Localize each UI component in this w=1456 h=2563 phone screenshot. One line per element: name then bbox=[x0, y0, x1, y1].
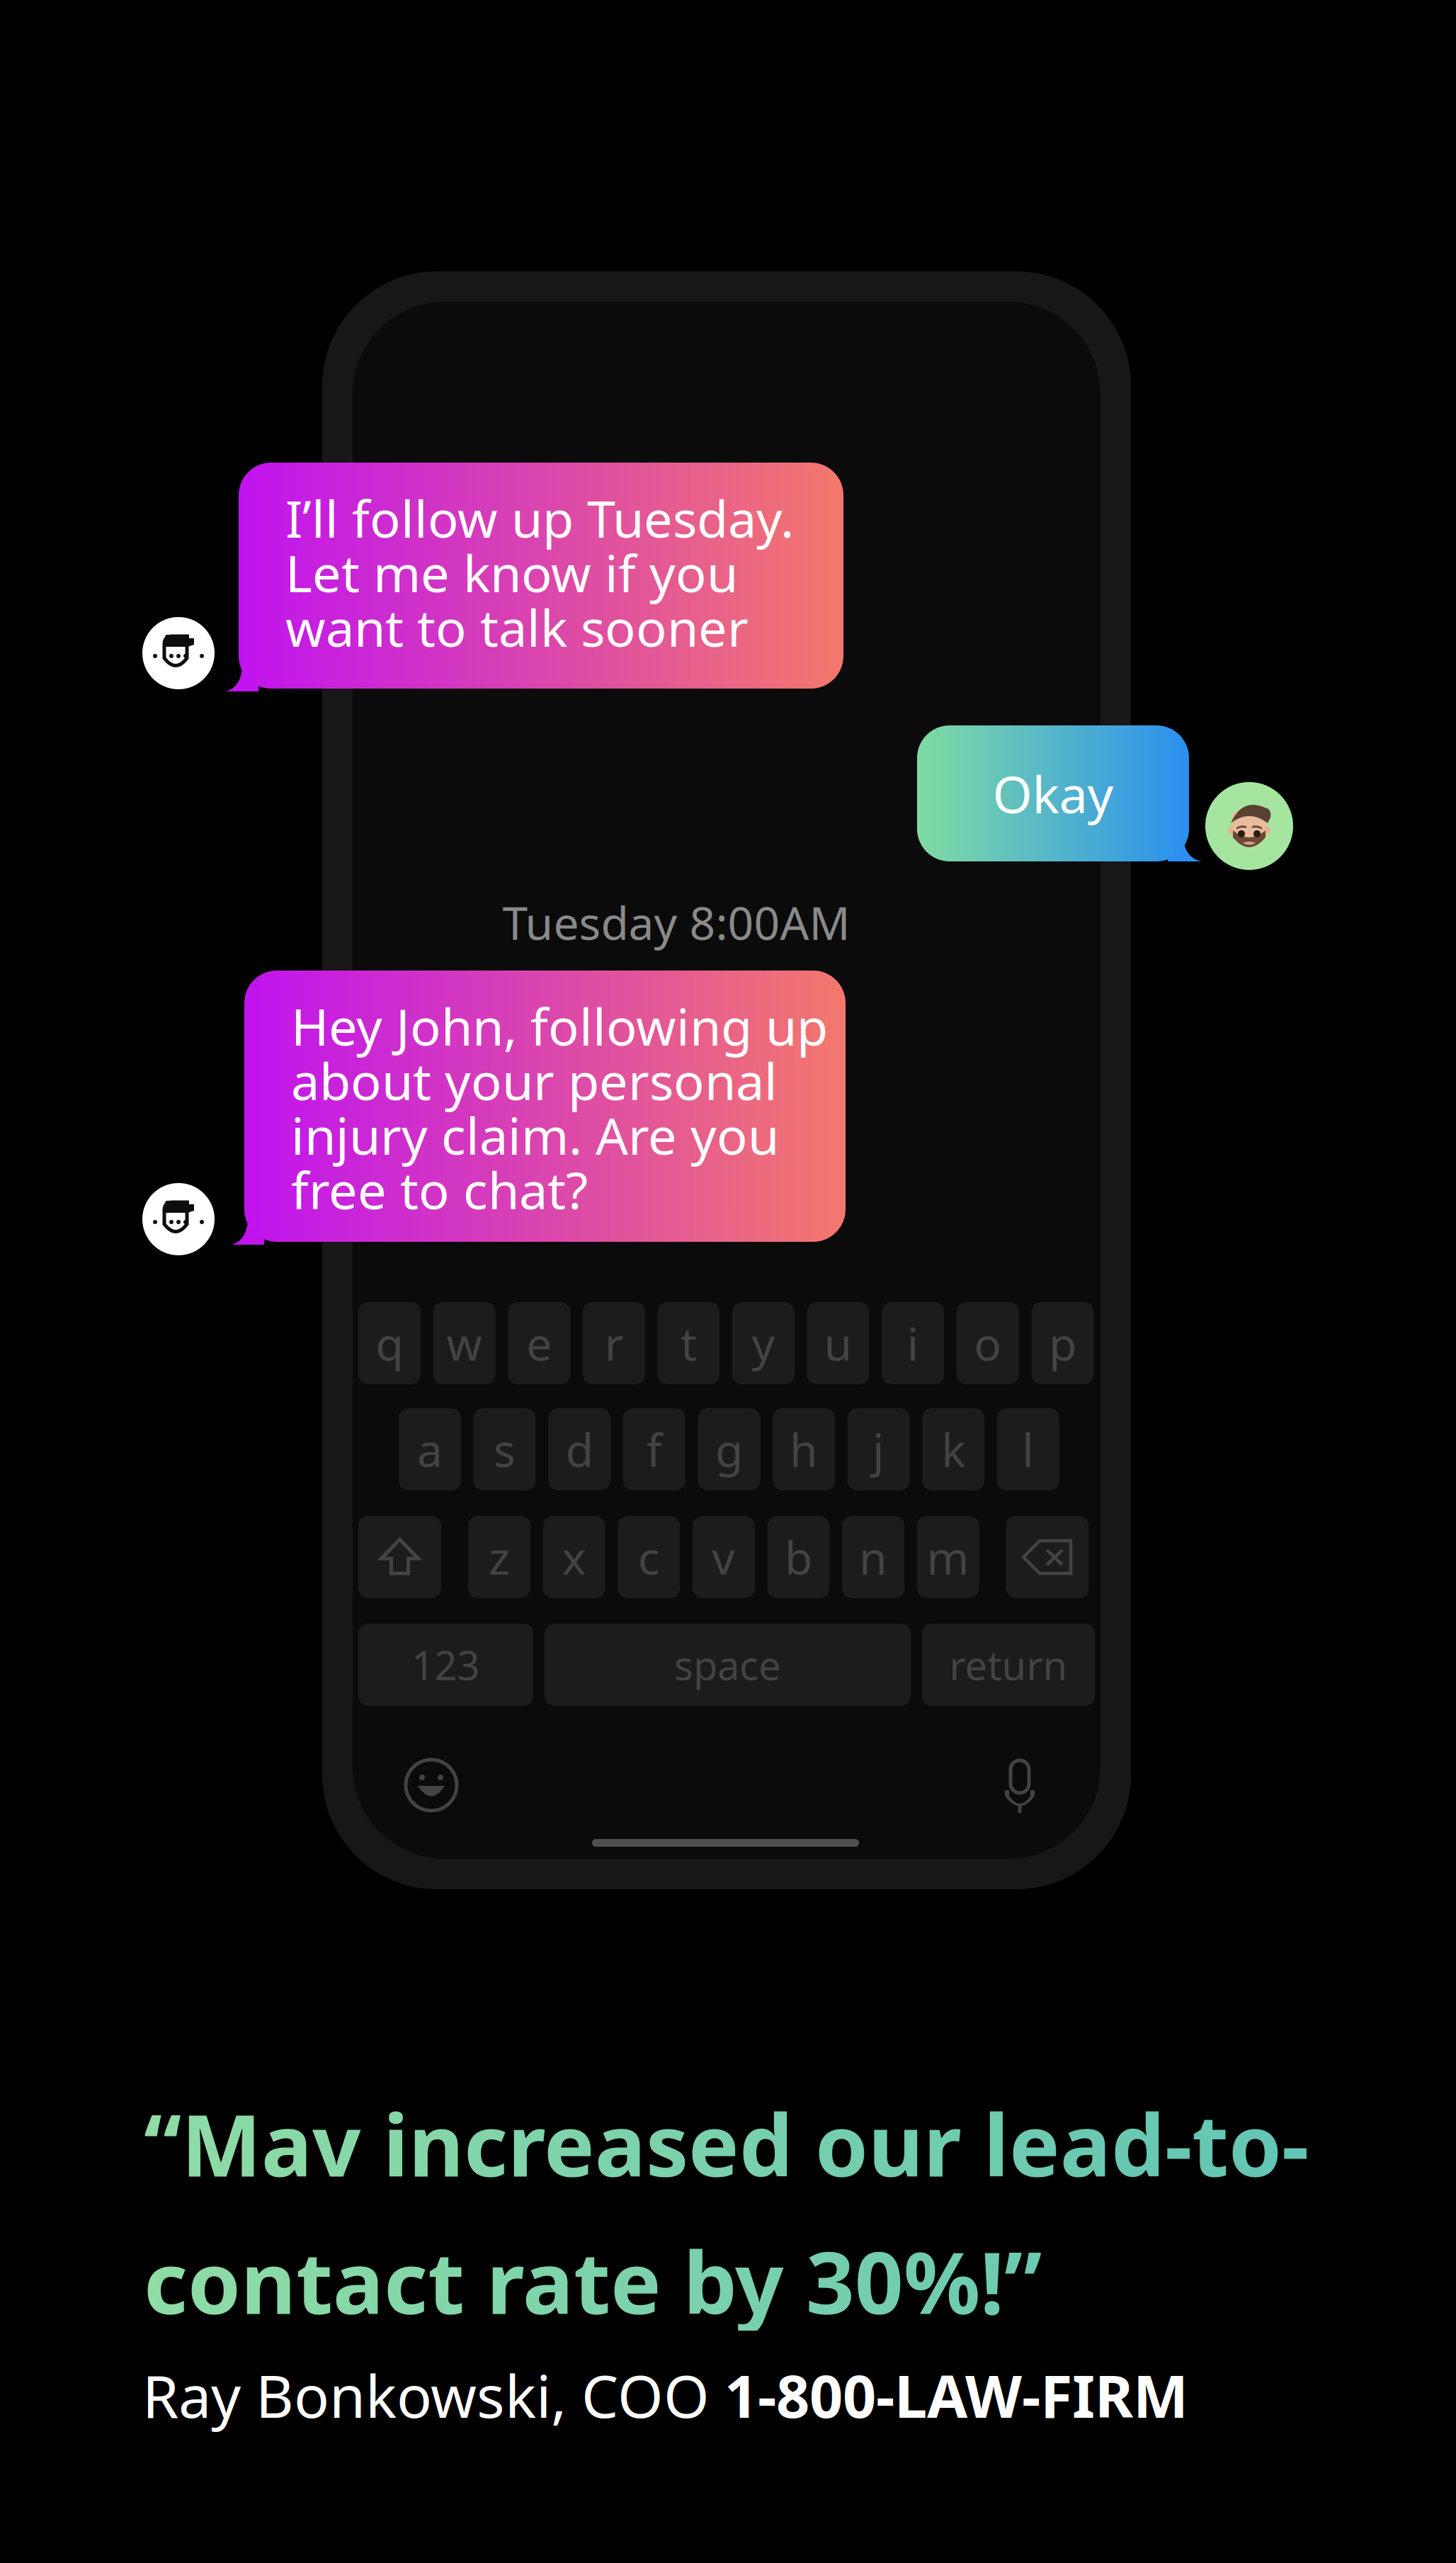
button[interactable]: x bbox=[543, 1516, 605, 1598]
staticText: l bbox=[1022, 1419, 1034, 1479]
button[interactable]: h bbox=[773, 1408, 835, 1490]
button[interactable]: w bbox=[433, 1302, 495, 1384]
button[interactable]: u bbox=[807, 1302, 869, 1384]
staticText: I’ll follow up Tuesday. bbox=[285, 484, 794, 552]
staticText: t bbox=[680, 1313, 697, 1373]
button[interactable]: o bbox=[957, 1302, 1019, 1384]
button[interactable]: z bbox=[468, 1516, 530, 1598]
staticText: injury claim. Are you bbox=[291, 1101, 779, 1169]
staticText: x bbox=[562, 1527, 586, 1587]
staticText: i bbox=[907, 1313, 919, 1373]
staticText: q bbox=[376, 1313, 403, 1373]
button[interactable]: v bbox=[692, 1516, 755, 1598]
button[interactable]: m bbox=[917, 1516, 979, 1598]
button[interactable]: j bbox=[847, 1408, 910, 1490]
button[interactable]: i bbox=[882, 1302, 944, 1384]
staticText: s bbox=[494, 1419, 516, 1479]
button[interactable]: a bbox=[399, 1408, 461, 1490]
staticText: u bbox=[824, 1313, 852, 1373]
button[interactable]: r bbox=[583, 1302, 645, 1384]
staticText: j bbox=[873, 1419, 885, 1479]
button[interactable]: n bbox=[842, 1516, 904, 1598]
staticText: Tuesday 8:00AM bbox=[502, 892, 850, 952]
staticText: want to talk sooner bbox=[285, 593, 749, 661]
staticText: h bbox=[790, 1419, 818, 1479]
button[interactable]: 123 bbox=[358, 1624, 533, 1706]
staticText: free to chat? bbox=[291, 1156, 588, 1223]
staticText: v bbox=[712, 1527, 735, 1587]
staticText: 123 bbox=[412, 1638, 480, 1691]
button[interactable]: Dictate bbox=[1004, 1760, 1035, 1811]
staticText: k bbox=[941, 1419, 965, 1479]
button[interactable]: p bbox=[1031, 1302, 1094, 1384]
staticText: return bbox=[949, 1638, 1068, 1691]
staticText: w bbox=[447, 1313, 482, 1373]
button[interactable]: Emoji keyboard bbox=[406, 1760, 457, 1811]
staticText: m bbox=[927, 1527, 969, 1587]
staticText: Ray Bonkowski, COO 1-800-LAW-FIRM bbox=[142, 2356, 1188, 2434]
staticText: c bbox=[638, 1527, 660, 1587]
staticText: Let me know if you bbox=[285, 539, 738, 606]
button[interactable]: k bbox=[922, 1408, 984, 1490]
button[interactable]: t bbox=[657, 1302, 720, 1384]
staticText: g bbox=[715, 1419, 743, 1479]
staticText: z bbox=[489, 1527, 510, 1587]
button[interactable]: f bbox=[623, 1408, 685, 1490]
button[interactable]: d bbox=[548, 1408, 611, 1490]
button[interactable]: e bbox=[508, 1302, 570, 1384]
staticText: a bbox=[417, 1419, 443, 1479]
button[interactable]: return bbox=[922, 1624, 1095, 1706]
staticText: p bbox=[1049, 1313, 1076, 1373]
button[interactable]: l bbox=[997, 1408, 1059, 1490]
staticText: o bbox=[974, 1313, 1002, 1373]
staticText: about your personal bbox=[291, 1046, 778, 1114]
staticText: n bbox=[859, 1527, 887, 1587]
button[interactable]: Shift bbox=[358, 1516, 441, 1598]
button[interactable]: s bbox=[473, 1408, 536, 1490]
button[interactable]: q bbox=[358, 1302, 421, 1384]
staticText: r bbox=[605, 1313, 623, 1373]
staticText: f bbox=[646, 1419, 662, 1479]
staticText: b bbox=[785, 1527, 812, 1587]
button[interactable]: b bbox=[767, 1516, 830, 1598]
button[interactable]: Delete bbox=[1006, 1516, 1089, 1598]
staticText: Okay bbox=[993, 760, 1114, 827]
staticText: y bbox=[752, 1313, 775, 1373]
button[interactable]: y bbox=[732, 1302, 795, 1384]
button[interactable]: c bbox=[618, 1516, 680, 1598]
staticText: space bbox=[674, 1638, 781, 1691]
staticText: Hey John, following up bbox=[291, 992, 828, 1060]
staticText: e bbox=[526, 1313, 552, 1373]
button[interactable]: g bbox=[698, 1408, 760, 1490]
staticText: d bbox=[566, 1419, 593, 1479]
button[interactable]: space bbox=[545, 1624, 911, 1706]
